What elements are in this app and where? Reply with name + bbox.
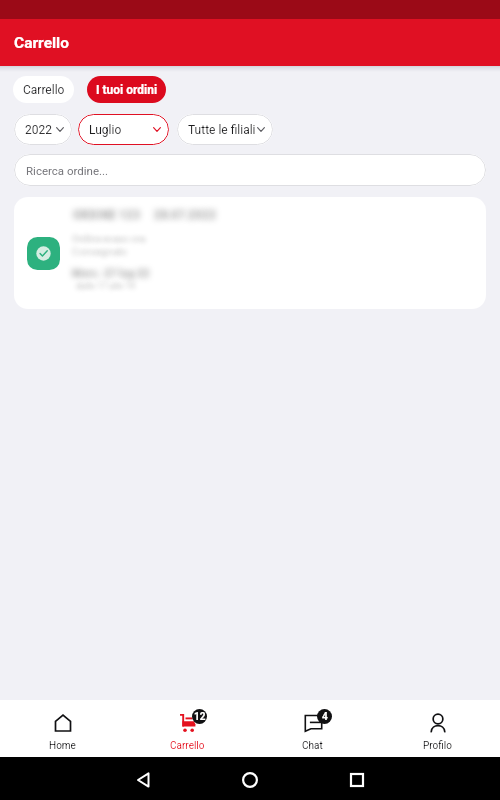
button[interactable]: 12 bbox=[125, 700, 250, 757]
staticText: Carrello bbox=[23, 83, 65, 97]
staticText: Carrello bbox=[14, 34, 69, 52]
staticText: Ricerca ordine... bbox=[26, 164, 109, 177]
staticText: Luglio bbox=[89, 123, 122, 137]
button[interactable]: Carrello bbox=[13, 76, 74, 103]
button[interactable]: Home bbox=[0, 700, 125, 757]
button[interactable]: 2022 bbox=[14, 114, 72, 145]
staticText: I tuoi ordini bbox=[96, 83, 158, 97]
staticText: Tutte le filiali bbox=[188, 123, 256, 137]
staticText: 4 bbox=[322, 711, 328, 723]
other: Ordine consegnato bbox=[27, 237, 60, 270]
staticText: Carrello bbox=[170, 740, 205, 752]
button[interactable]: I tuoi ordini bbox=[87, 76, 166, 103]
staticText: Chat bbox=[302, 740, 323, 752]
button[interactable]: Ricerca ordine... bbox=[14, 154, 486, 186]
button[interactable]: 4 bbox=[250, 700, 375, 757]
button[interactable]: Luglio bbox=[78, 114, 169, 145]
staticText: Profilo bbox=[423, 740, 452, 752]
staticText: 2022 bbox=[25, 123, 52, 137]
staticText: Home bbox=[49, 740, 76, 752]
staticText: 12 bbox=[194, 711, 206, 723]
button[interactable]: Tutte le filiali bbox=[177, 114, 273, 145]
button[interactable]: Profilo bbox=[375, 700, 500, 757]
button[interactable]: Ordine consegnato bbox=[14, 197, 486, 309]
